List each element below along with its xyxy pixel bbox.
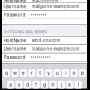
button[interactable]: h	[49, 81, 56, 89]
button[interactable]: Password	[2, 53, 87, 61]
button[interactable]: s	[16, 81, 23, 89]
button[interactable]: Username	[2, 2, 87, 10]
button[interactable]: p	[79, 69, 86, 77]
staticText: f	[35, 82, 37, 88]
staticText: mail@one-example.com	[31, 4, 79, 9]
button[interactable]: g	[41, 81, 48, 89]
staticText: ••••••••	[30, 13, 46, 17]
staticText: Host Name	[3, 38, 26, 43]
staticText: y	[47, 70, 50, 76]
button[interactable]: u	[54, 69, 61, 77]
staticText: d	[26, 82, 29, 88]
staticText: g	[43, 82, 46, 88]
button[interactable]: e	[20, 69, 27, 77]
staticText: w	[13, 70, 17, 76]
button[interactable]: f	[32, 81, 40, 89]
staticText: q	[5, 70, 8, 76]
button[interactable]: t	[37, 69, 44, 77]
staticText: OUTGOING MAIL SERVER	[3, 30, 46, 34]
staticText: u	[56, 70, 59, 76]
staticText: r	[31, 70, 33, 76]
button[interactable]: a	[7, 81, 14, 89]
staticText: s	[18, 82, 21, 88]
button[interactable]: y	[45, 69, 52, 77]
button[interactable]: o	[70, 69, 78, 77]
staticText: mail@one-example.com	[31, 46, 79, 51]
staticText: Password	[3, 12, 25, 18]
button[interactable]: j	[58, 81, 65, 89]
button[interactable]: k	[66, 81, 73, 89]
staticText: j	[61, 82, 62, 88]
staticText: h	[51, 82, 54, 88]
staticText: p	[81, 70, 84, 76]
staticText: Password	[3, 55, 25, 60]
staticText: Host Name	[3, 0, 26, 4]
button[interactable]: l	[75, 81, 82, 89]
button[interactable]: Username	[2, 45, 87, 53]
button[interactable]: Host Name	[2, 0, 87, 2]
staticText: Username	[3, 46, 26, 52]
button[interactable]: i	[62, 69, 69, 77]
staticText: ••••••••••	[30, 55, 50, 59]
staticText: send.one.com	[31, 38, 60, 43]
staticText: a	[9, 82, 12, 88]
button[interactable]: q	[3, 69, 10, 77]
staticText: o	[73, 70, 76, 76]
staticText: t	[39, 70, 41, 76]
staticText: e	[22, 70, 25, 76]
staticText: k	[68, 82, 71, 88]
button[interactable]: w	[11, 69, 18, 77]
button[interactable]: Password	[2, 11, 87, 19]
button[interactable]: r	[28, 69, 35, 77]
button[interactable]: d	[24, 81, 31, 89]
button[interactable]: Host Name	[2, 36, 87, 44]
staticText: Username	[3, 4, 26, 9]
staticText: mail.one.com	[31, 0, 58, 4]
staticText: l	[78, 82, 79, 88]
staticText: i	[65, 70, 66, 76]
